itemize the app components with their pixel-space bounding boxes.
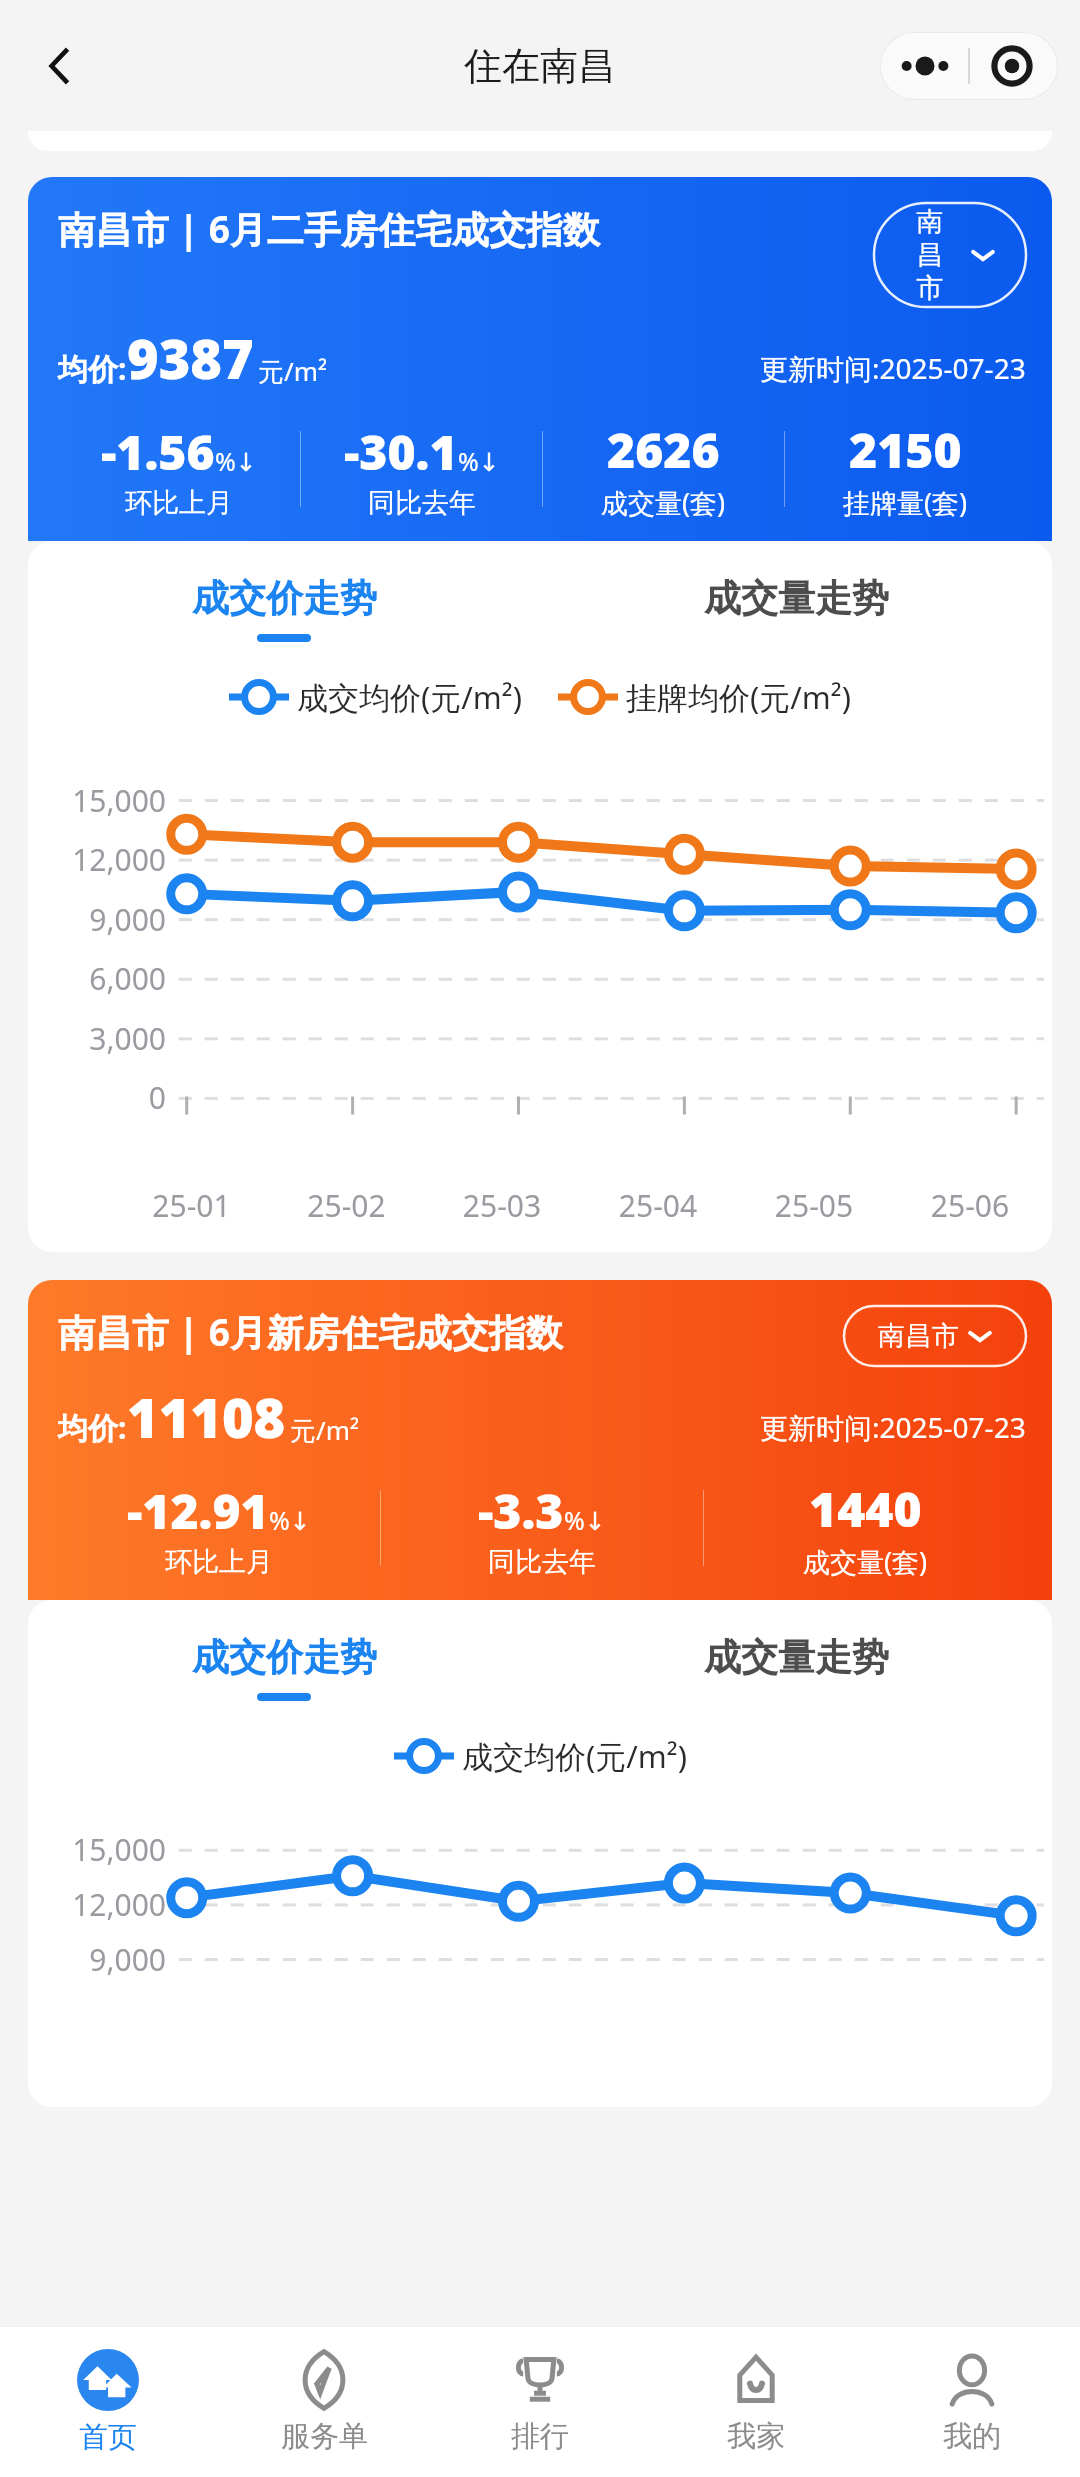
staticText: 9,000 (42, 899, 166, 940)
staticText: 15,000 (42, 1829, 166, 1870)
button[interactable]: 成交价走势 (28, 575, 540, 642)
staticText: %↓ (564, 1503, 606, 1537)
staticText: 12,000 (42, 839, 166, 880)
button[interactable]: 南昌市 (844, 1306, 1026, 1366)
staticText: %↓ (269, 1503, 311, 1537)
staticText: 更新时间:2025-07-23 (760, 349, 1026, 387)
staticText: 25-05 (736, 1185, 892, 1226)
staticText: 成交价走势 (192, 1634, 377, 1681)
staticText: 2150 (849, 417, 962, 482)
staticText: 同比去年 (488, 1545, 596, 1579)
button[interactable]: -12.91 (58, 1478, 380, 1579)
staticText: 成交量走势 (704, 575, 889, 622)
staticText: 排行 (511, 2418, 569, 2455)
staticText: 成交量(套) (803, 1543, 928, 1580)
staticText: 成交均价(元/m²) (462, 1735, 687, 1777)
staticText: 25-06 (892, 1185, 1048, 1226)
staticText: 9,000 (42, 1939, 166, 1980)
button[interactable]: -3.3 (381, 1478, 703, 1579)
staticText: 元/m² (290, 1412, 360, 1448)
button[interactable]: 成交量走势 (540, 1634, 1052, 1701)
staticText: 25-04 (580, 1185, 736, 1226)
staticText: 南昌市 (904, 205, 956, 305)
staticText: %↓ (458, 444, 500, 478)
staticText: 25-03 (424, 1185, 580, 1226)
staticText: 首页 (79, 2419, 137, 2456)
button[interactable]: 成交量走势 (540, 575, 1052, 642)
staticText: 南昌市 | 6月二手房住宅成交指数 (58, 203, 864, 254)
button[interactable]: 南昌市 | 6月新房住宅成交指数 (28, 1280, 1052, 1600)
staticText: 更新时间:2025-07-23 (760, 1408, 1026, 1446)
button[interactable]: -1.56 (58, 419, 300, 520)
staticText: 成交量走势 (704, 1634, 889, 1681)
staticText: 挂牌量(套) (843, 484, 968, 521)
staticText: 25-01 (114, 1185, 269, 1226)
staticText: 元/m² (258, 353, 328, 389)
button[interactable]: 南昌市 (874, 203, 1026, 307)
staticText: 2626 (607, 417, 720, 482)
staticText: 成交均价(元/m²) (297, 676, 522, 718)
button[interactable]: More options and close (880, 32, 1058, 100)
staticText: %↓ (215, 444, 257, 478)
staticText: 6,000 (42, 958, 166, 999)
button[interactable]: Back (20, 26, 100, 106)
staticText: 3,000 (42, 1018, 166, 1059)
staticText: 9387 (127, 321, 254, 395)
button[interactable]: 1440 (704, 1476, 1026, 1580)
staticText: 25-02 (269, 1185, 424, 1226)
staticText: 我家 (727, 2418, 785, 2455)
button[interactable]: -30.1 (301, 419, 542, 520)
staticText: 南昌市 | 6月新房住宅成交指数 (58, 1306, 834, 1357)
staticText: 1440 (809, 1476, 922, 1541)
staticText: 南昌市 (878, 1319, 959, 1353)
staticText: -12.91 (127, 1478, 269, 1543)
staticText: -3.3 (478, 1478, 564, 1543)
staticText: 同比去年 (368, 486, 476, 520)
button[interactable]: 我家 (648, 2327, 864, 2477)
staticText: -30.1 (344, 419, 458, 484)
button[interactable]: 我的 (864, 2327, 1080, 2477)
staticText: 环比上月 (165, 1545, 273, 1579)
staticText: 服务单 (281, 2418, 368, 2455)
staticText: 均价: (58, 348, 127, 389)
staticText: -1.56 (101, 419, 215, 484)
staticText: 12,000 (42, 1884, 166, 1925)
staticText: 11108 (127, 1380, 286, 1454)
button[interactable]: 2150 (785, 417, 1026, 521)
staticText: 成交量(套) (601, 484, 726, 521)
button[interactable]: 服务单 (216, 2327, 432, 2477)
staticText: 15,000 (42, 780, 166, 821)
staticText: 成交价走势 (192, 575, 377, 622)
staticText: 住在南昌 (464, 42, 616, 90)
staticText: 我的 (943, 2418, 1001, 2455)
staticText: 0 (42, 1077, 166, 1118)
button[interactable]: 南昌市 | 6月二手房住宅成交指数 (28, 177, 1052, 541)
staticText: 挂牌均价(元/m²) (626, 676, 851, 718)
button[interactable]: 2626 (543, 417, 784, 521)
button[interactable]: 首页 (0, 2327, 216, 2477)
button[interactable]: 成交价走势 (28, 1634, 540, 1701)
button[interactable]: 排行 (432, 2327, 648, 2477)
staticText: 环比上月 (125, 486, 233, 520)
staticText: 均价: (58, 1407, 127, 1448)
